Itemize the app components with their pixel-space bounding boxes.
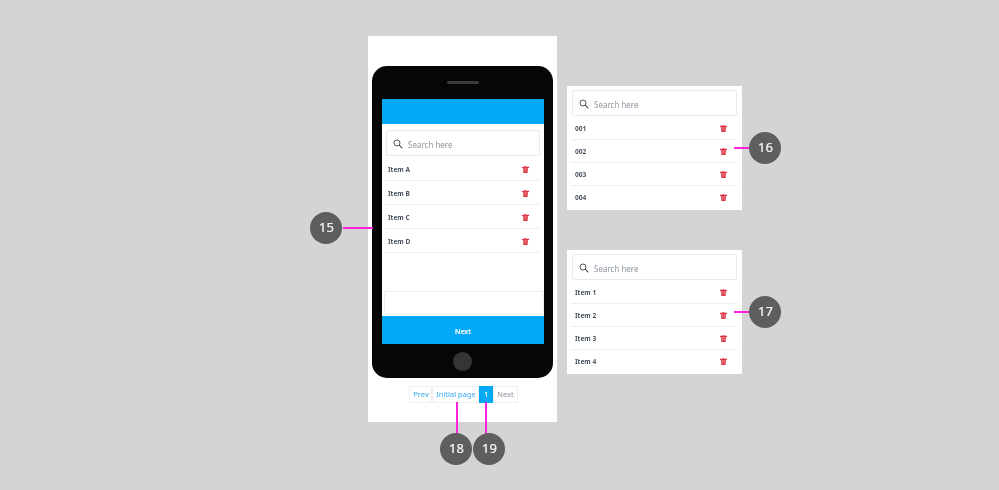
staticText: 18 xyxy=(449,439,464,457)
button[interactable]: Item D xyxy=(382,229,544,253)
staticText: Item 4 xyxy=(575,357,597,366)
button[interactable]: Search here xyxy=(572,254,737,280)
other: Delete xyxy=(720,312,727,319)
staticText: 003 xyxy=(575,170,587,179)
staticText: Prev xyxy=(413,389,429,399)
other: Delete xyxy=(720,289,727,296)
staticText: 001 xyxy=(575,124,587,133)
staticText: Item A xyxy=(388,165,411,174)
other: Delete xyxy=(720,194,727,201)
button[interactable]: Item 3 xyxy=(567,327,742,350)
staticText: 004 xyxy=(575,193,587,202)
staticText: 16 xyxy=(758,138,773,156)
button[interactable]: Item A xyxy=(382,157,544,181)
staticText: Item B xyxy=(388,189,410,198)
button[interactable]: Item C xyxy=(382,205,544,229)
other: Delete xyxy=(522,190,529,197)
staticText: Item C xyxy=(388,213,410,222)
staticText: Item 1 xyxy=(575,288,597,297)
button[interactable]: 003 xyxy=(567,163,742,186)
staticText: 002 xyxy=(575,147,587,156)
staticText: 15 xyxy=(319,218,334,236)
staticText: Search here xyxy=(594,263,639,274)
other: Delete xyxy=(720,125,727,132)
button[interactable]: Item B xyxy=(382,181,544,205)
button[interactable]: Item 1 xyxy=(567,281,742,304)
staticText: Search here xyxy=(408,139,453,150)
other: Delete xyxy=(522,166,529,173)
staticText: Item 3 xyxy=(575,334,597,343)
staticText: Item 2 xyxy=(575,311,597,320)
other: Delete xyxy=(720,335,727,342)
other: Delete xyxy=(720,358,727,365)
other: Delete xyxy=(720,171,727,178)
button[interactable]: Next xyxy=(382,316,544,344)
button[interactable]: Search here xyxy=(386,130,540,156)
button[interactable]: Next xyxy=(493,386,518,403)
button[interactable]: Item 2 xyxy=(567,304,742,327)
staticText: Next xyxy=(497,389,514,399)
staticText: 17 xyxy=(758,302,773,320)
staticText: Search here xyxy=(594,99,639,110)
button[interactable]: Item 4 xyxy=(567,350,742,373)
button[interactable]: 004 xyxy=(567,186,742,209)
other: Delete xyxy=(522,238,529,245)
staticText: Next xyxy=(455,326,471,336)
button[interactable]: Prev xyxy=(409,386,432,403)
other: Delete xyxy=(720,148,727,155)
button[interactable]: Initial page xyxy=(432,386,479,403)
button[interactable]: 001 xyxy=(567,117,742,140)
button[interactable]: Search here xyxy=(572,90,737,116)
staticText: Initial page xyxy=(436,389,476,399)
other: Delete xyxy=(522,214,529,221)
button[interactable]: Home xyxy=(453,352,472,371)
staticText: 1 xyxy=(484,389,489,399)
staticText: Item D xyxy=(388,237,411,246)
staticText: 19 xyxy=(482,439,497,457)
button[interactable]: 002 xyxy=(567,140,742,163)
button[interactable]: 1 xyxy=(479,386,493,403)
